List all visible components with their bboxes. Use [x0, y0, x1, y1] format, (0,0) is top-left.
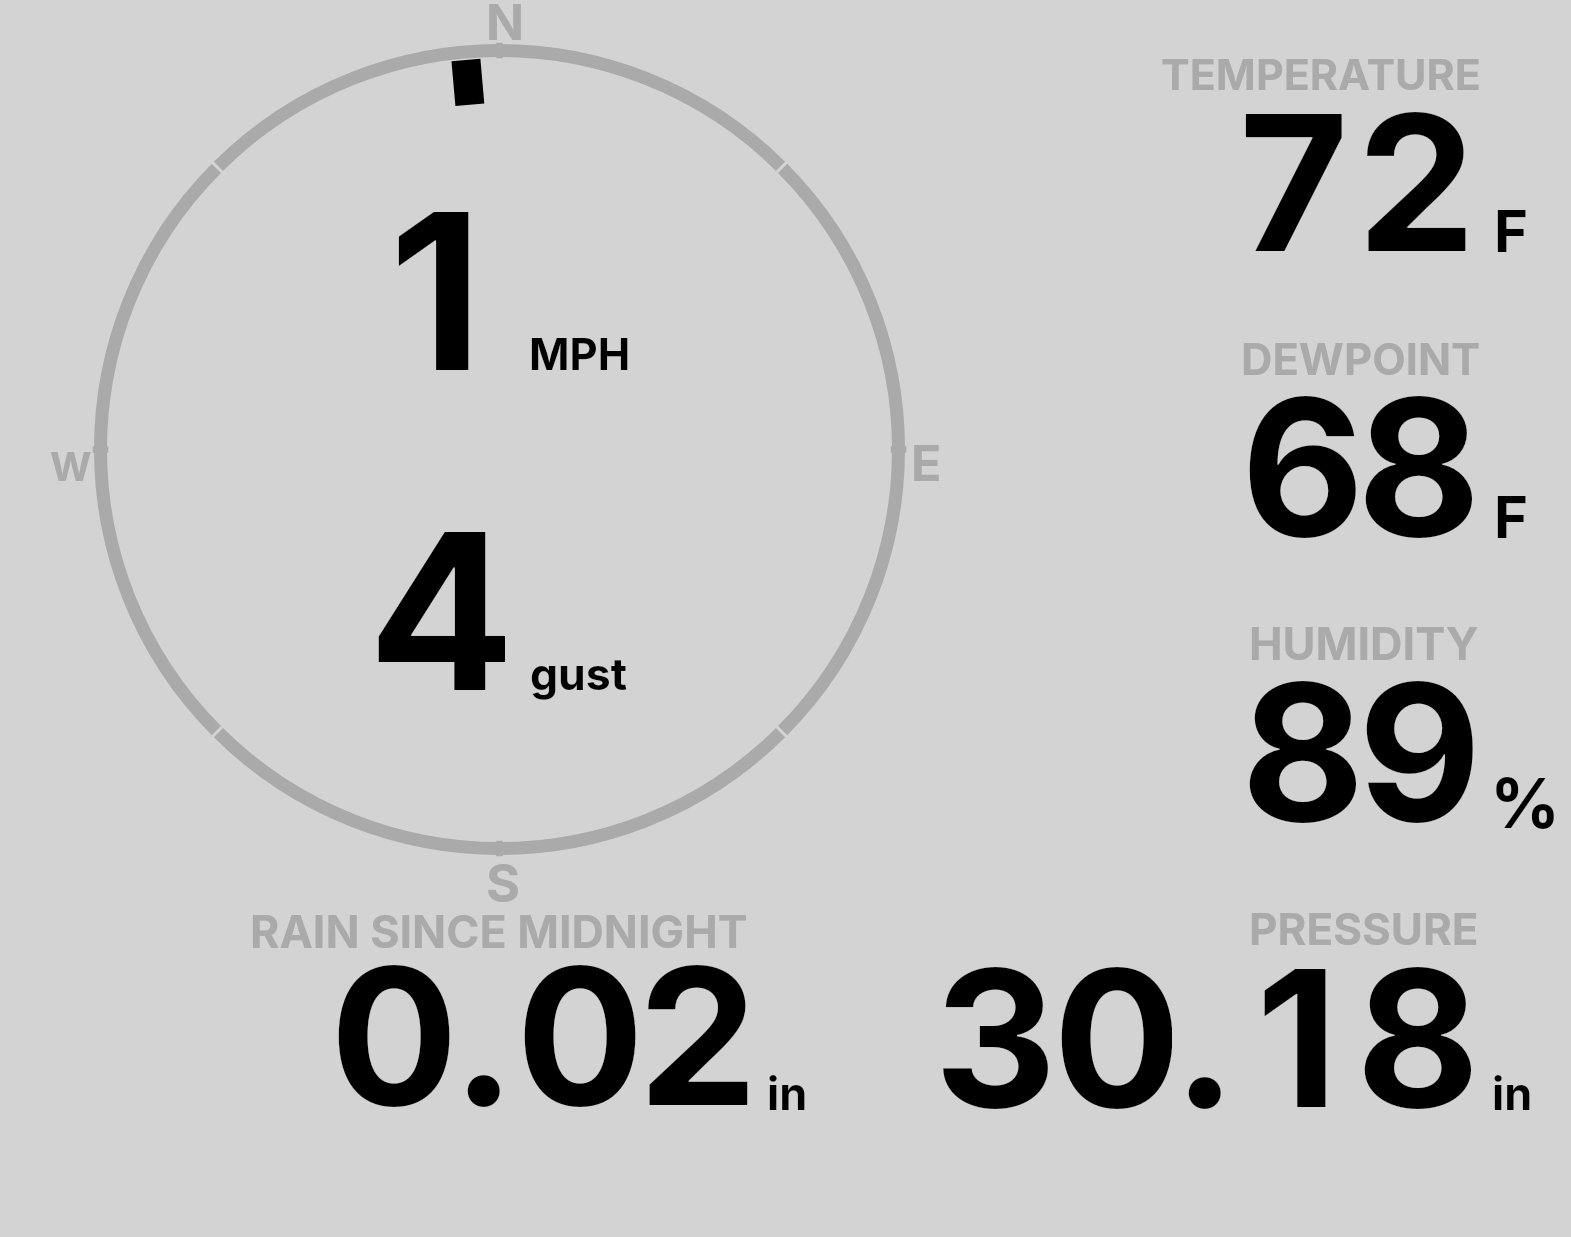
- staticText: F: [1494, 482, 1529, 552]
- staticText: 7: [1239, 68, 1349, 283]
- button[interactable]: PRESSURE: [930, 900, 1530, 1115]
- staticText: 1: [389, 160, 483, 423]
- button[interactable]: RAIN SINCE MIDNIGHT: [240, 900, 820, 1115]
- button[interactable]: HUMIDITY: [1150, 615, 1550, 830]
- staticText: PRESSURE: [1249, 902, 1479, 955]
- staticText: HUMIDITY: [1249, 616, 1479, 670]
- staticText: 0: [1053, 923, 1172, 1138]
- button[interactable]: TEMPERATURE: [1150, 45, 1550, 260]
- staticText: .: [452, 921, 516, 1136]
- staticText: %: [1490, 761, 1561, 844]
- staticText: 2: [1357, 68, 1476, 283]
- staticText: N: [486, 0, 525, 52]
- staticText: 2: [638, 921, 758, 1136]
- staticText: MPH: [529, 328, 631, 381]
- staticText: 1: [1256, 923, 1338, 1138]
- staticText: 4: [368, 480, 515, 743]
- button[interactable]: Wind compass, 1 mph from the north: [94, 44, 906, 856]
- staticText: 0: [516, 921, 637, 1136]
- staticText: RAIN SINCE MIDNIGHT: [250, 905, 748, 959]
- staticText: in: [1492, 1066, 1533, 1120]
- staticText: .: [1173, 923, 1237, 1138]
- button[interactable]: DEWPOINT: [1150, 330, 1550, 545]
- staticText: 8: [1357, 352, 1473, 567]
- staticText: F: [1494, 196, 1529, 266]
- staticText: W: [50, 442, 92, 490]
- staticText: 3: [934, 923, 1053, 1138]
- staticText: in: [767, 1066, 808, 1120]
- staticText: S: [486, 852, 521, 915]
- staticText: E: [911, 433, 942, 493]
- staticText: TEMPERATURE: [1161, 48, 1481, 100]
- staticText: 6: [1241, 352, 1357, 567]
- staticText: 8: [1241, 637, 1358, 852]
- staticText: 8: [1356, 923, 1475, 1138]
- staticText: 0: [330, 921, 451, 1136]
- staticText: DEWPOINT: [1241, 333, 1481, 386]
- staticText: 9: [1358, 637, 1475, 852]
- staticText: gust: [530, 647, 628, 701]
